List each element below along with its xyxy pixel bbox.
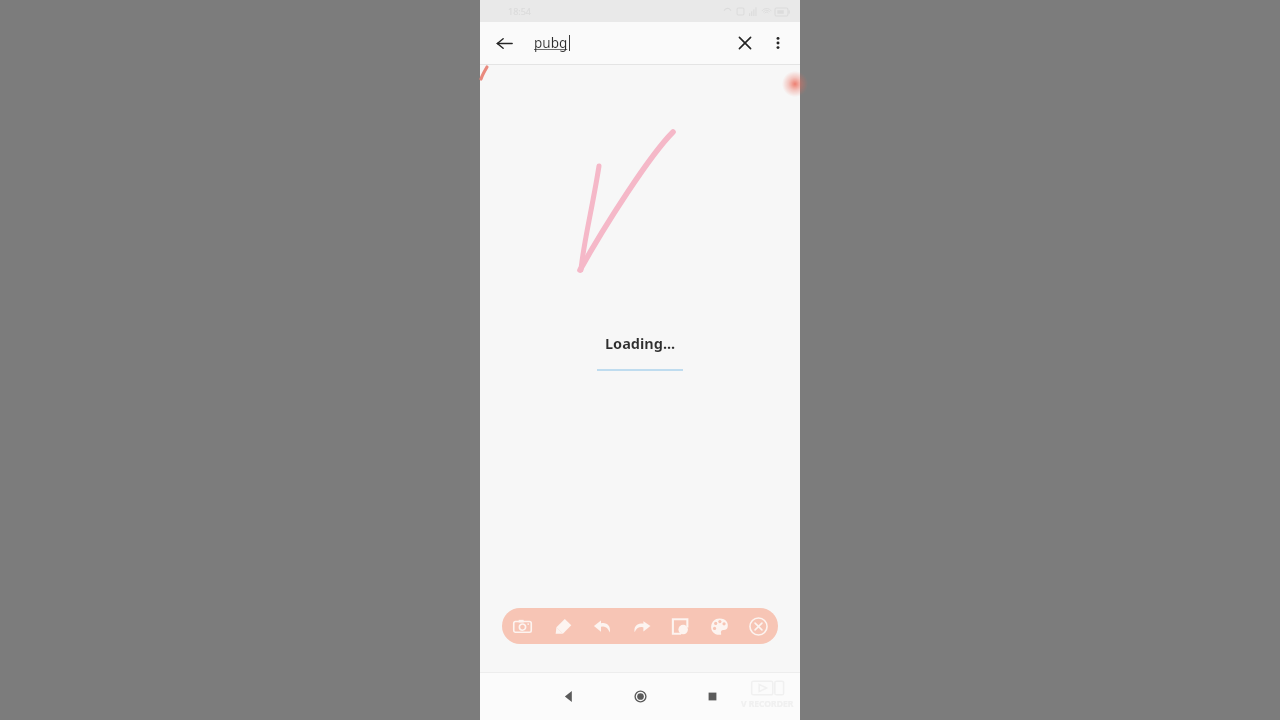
button[interactable]: Camera	[502, 608, 542, 644]
button[interactable]: Recents	[676, 672, 748, 720]
button[interactable]: pubg	[534, 34, 570, 52]
button[interactable]: Home	[604, 672, 676, 720]
staticText: V RECORDER	[741, 698, 794, 710]
button[interactable]: Shapes	[661, 608, 700, 644]
button[interactable]: Undo	[582, 608, 622, 644]
button[interactable]: Back	[532, 672, 604, 720]
staticText: Loading...	[605, 333, 676, 353]
staticText: pubg	[534, 34, 568, 52]
button[interactable]: More options	[764, 29, 792, 57]
button[interactable]: Color palette	[700, 608, 739, 644]
staticText: 18:54	[508, 5, 532, 17]
button[interactable]: Eraser	[542, 608, 582, 644]
button[interactable]: Clear search	[730, 28, 760, 58]
button[interactable]: Back	[489, 28, 519, 58]
button[interactable]: Redo	[622, 608, 661, 644]
button[interactable]: Close	[739, 608, 778, 644]
